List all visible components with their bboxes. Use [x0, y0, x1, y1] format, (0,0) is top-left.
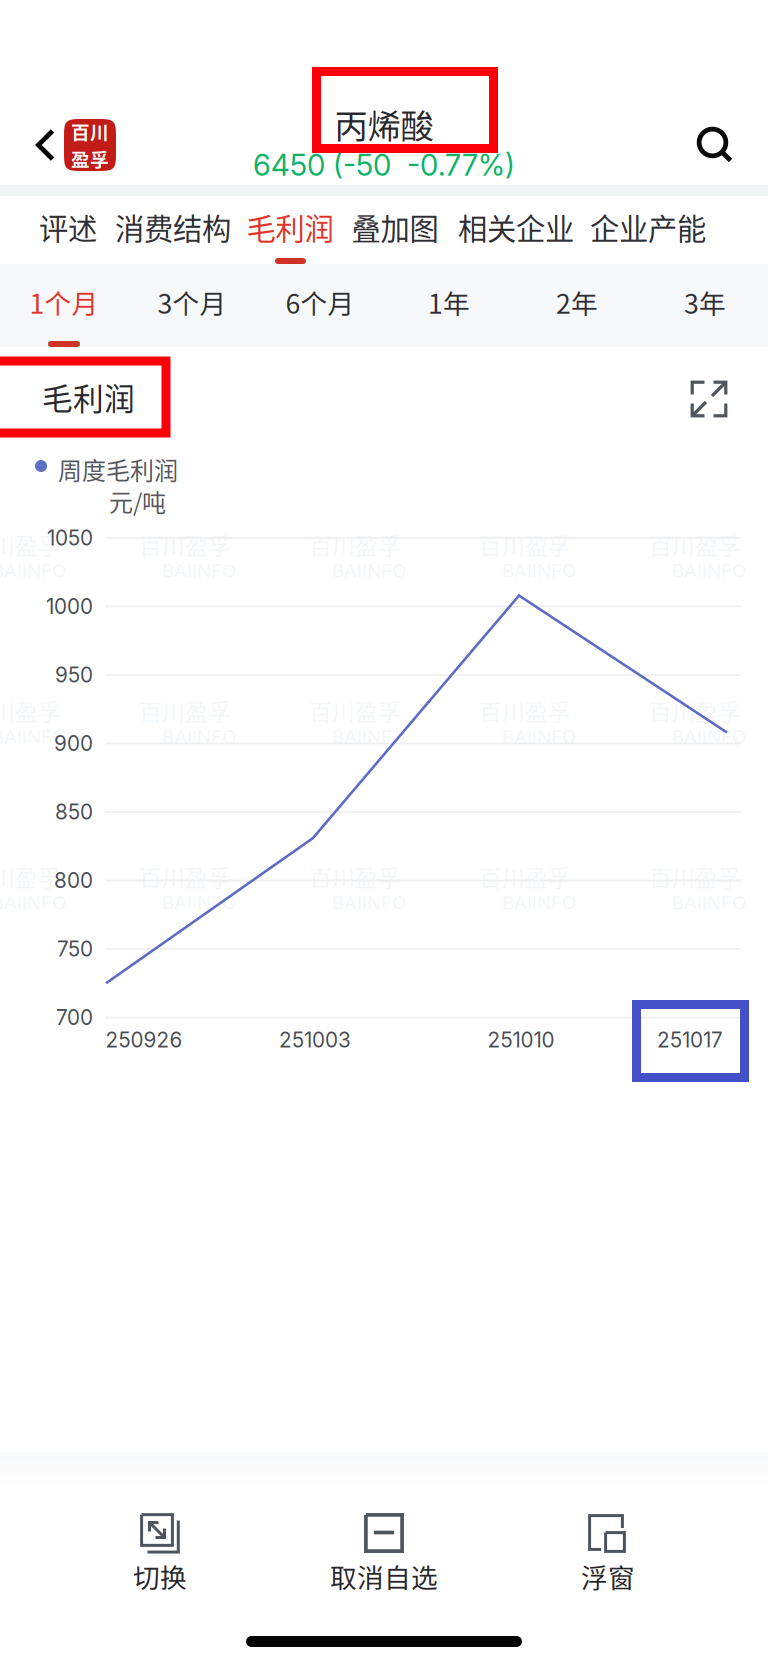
staticText: 企业产能 — [590, 206, 706, 248]
staticText: 盈孚 — [71, 145, 109, 172]
staticText: 毛利润 — [246, 206, 333, 248]
staticText: BAIINFO — [162, 891, 236, 914]
staticText: 2年 — [556, 283, 598, 321]
staticText: 百川盈孚 — [309, 694, 401, 727]
staticText: 百川盈孚 — [309, 528, 401, 561]
staticText: 毛利润 — [42, 375, 135, 419]
staticText: 251003 — [279, 1027, 351, 1052]
staticText: 1000 — [46, 594, 93, 619]
staticText: BAIINFO — [672, 559, 746, 582]
staticText: 百川盈孚 — [139, 528, 231, 561]
staticText: BAIINFO — [162, 725, 236, 748]
button[interactable]: 毛利润 — [200, 202, 380, 252]
staticText: BAIINFO — [162, 559, 236, 582]
staticText: 1年 — [428, 283, 470, 321]
staticText: 百川盈孚 — [479, 694, 571, 727]
staticText: 251017 — [657, 1027, 723, 1052]
button[interactable]: Fullscreen — [690, 380, 727, 417]
staticText: 750 — [57, 936, 93, 961]
staticText: 250926 — [105, 1027, 182, 1052]
staticText: BAIINFO — [502, 891, 576, 914]
staticText: 取消自选 — [330, 1557, 438, 1595]
staticText: 叠加图 — [351, 206, 438, 248]
button[interactable]: 取消自选 — [256, 1492, 512, 1632]
button[interactable]: 1年 — [385, 267, 513, 337]
staticText: 百川盈孚 — [479, 860, 571, 893]
staticText: 百川盈孚 — [309, 860, 401, 893]
staticText: 950 — [55, 662, 93, 687]
staticText: BAIINFO — [332, 725, 406, 748]
staticText: 900 — [54, 731, 93, 756]
staticText: BAIINFO — [0, 725, 66, 748]
button[interactable]: 相关企业 — [426, 202, 606, 252]
staticText: 百川盈孚 — [649, 694, 741, 727]
button[interactable]: Search — [687, 117, 743, 173]
staticText: 评述 — [39, 206, 97, 248]
button[interactable]: 2年 — [513, 267, 641, 337]
staticText: BAIINFO — [332, 559, 406, 582]
button[interactable]: 叠加图 — [305, 202, 485, 252]
staticText: 相关企业 — [458, 206, 574, 248]
button[interactable]: Back — [36, 117, 122, 173]
staticText: 百川 — [71, 118, 109, 145]
staticText: 1个月 — [29, 283, 98, 321]
button[interactable]: 评述 — [0, 202, 158, 252]
staticText: 百川盈孚 — [0, 694, 61, 727]
staticText: BAIINFO — [0, 559, 66, 582]
staticText: 浮窗 — [581, 1557, 635, 1595]
staticText: 6450 (-50 -0.77%) — [253, 147, 515, 183]
staticText: 百川盈孚 — [479, 528, 571, 561]
staticText: 百川盈孚 — [0, 860, 61, 893]
staticText: BAIINFO — [502, 559, 576, 582]
staticText: 元/吨 — [109, 484, 166, 518]
staticText: 1050 — [47, 525, 93, 550]
staticText: 百川盈孚 — [139, 694, 231, 727]
staticText: BAIINFO — [672, 891, 746, 914]
staticText: 800 — [54, 868, 93, 893]
staticText: BAIINFO — [502, 725, 576, 748]
staticText: 3年 — [684, 283, 726, 321]
button[interactable]: 消费结构 — [83, 202, 263, 252]
button[interactable]: 1个月 — [0, 267, 128, 337]
button[interactable]: 浮窗 — [512, 1492, 768, 1632]
staticText: 百川盈孚 — [0, 528, 61, 561]
staticText: 百川盈孚 — [649, 860, 741, 893]
staticText: 百川盈孚 — [649, 528, 741, 561]
button[interactable]: 企业产能 — [558, 202, 738, 252]
staticText: 850 — [55, 799, 93, 824]
button[interactable]: 切换 — [0, 1492, 256, 1632]
staticText: 消费结构 — [115, 206, 231, 248]
staticText: 切换 — [133, 1557, 187, 1595]
staticText: 251010 — [487, 1027, 554, 1052]
staticText: 周度毛利润 — [58, 452, 178, 486]
staticText: BAIINFO — [0, 891, 66, 914]
button[interactable]: 3个月 — [128, 267, 256, 337]
button[interactable]: 6个月 — [256, 267, 384, 337]
button[interactable]: 3年 — [641, 267, 768, 337]
staticText: 3个月 — [157, 283, 226, 321]
staticText: 百川盈孚 — [139, 860, 231, 893]
staticText: 丙烯酸 — [334, 100, 433, 148]
staticText: BAIINFO — [672, 725, 746, 748]
staticText: BAIINFO — [332, 891, 406, 914]
staticText: 6个月 — [285, 283, 354, 321]
staticText: 700 — [56, 1005, 93, 1030]
